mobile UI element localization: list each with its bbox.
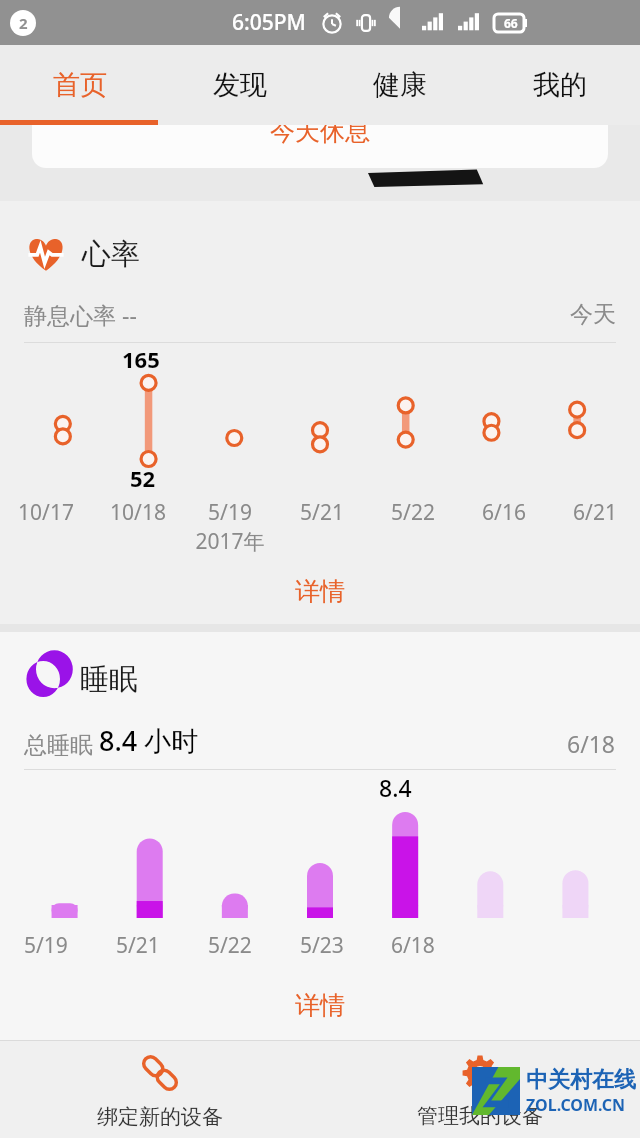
- staticText: 今天休息: [270, 125, 370, 147]
- staticText: 5/22: [208, 931, 252, 960]
- staticText: ZOL.COM.CN: [526, 1094, 626, 1116]
- staticText: 首页: [53, 68, 107, 102]
- staticText: 8.4 小时: [99, 722, 199, 759]
- button[interactable]: 详情: [0, 970, 640, 1040]
- staticText: 66: [504, 15, 518, 31]
- staticText: 165: [122, 344, 160, 374]
- staticText: 静息心率 --: [24, 299, 137, 330]
- staticText: 5/23: [300, 931, 344, 960]
- staticText: 我的: [533, 68, 587, 102]
- button[interactable]: 健康: [320, 45, 480, 125]
- staticText: 总睡眠: [24, 728, 99, 759]
- staticText: 6/18: [567, 728, 616, 759]
- staticText: 5/21: [300, 498, 344, 527]
- staticText: 绑定新的设备: [97, 1104, 223, 1130]
- staticText: 管理我的设备: [417, 1103, 543, 1129]
- staticText: 心率: [82, 236, 140, 273]
- staticText: 睡眠: [80, 661, 138, 698]
- button[interactable]: 发现: [160, 45, 320, 125]
- staticText: 5/19: [208, 498, 252, 527]
- staticText: 中关村在线: [526, 1066, 636, 1094]
- staticText: 5/22: [391, 498, 435, 527]
- staticText: 6/18: [391, 931, 435, 960]
- button[interactable]: 详情: [0, 558, 640, 624]
- staticText: 6/16: [482, 498, 526, 527]
- button[interactable]: 管理我的设备: [320, 1041, 640, 1138]
- staticText: 详情: [295, 576, 345, 607]
- staticText: 6:05PM: [232, 8, 306, 37]
- staticText: 发现: [213, 68, 267, 102]
- staticText: 52: [130, 463, 156, 493]
- button[interactable]: 首页: [0, 45, 160, 125]
- staticText: 详情: [295, 990, 345, 1021]
- staticText: 10/17: [18, 498, 74, 527]
- staticText: 健康: [373, 68, 427, 102]
- staticText: 6/21: [573, 498, 617, 527]
- staticText: 2: [19, 13, 28, 33]
- button[interactable]: 我的: [480, 45, 640, 125]
- staticText: 2017年: [195, 527, 265, 556]
- button[interactable]: 绑定新的设备: [0, 1041, 320, 1138]
- button[interactable]: 今天休息: [32, 125, 608, 168]
- staticText: 8.4: [379, 772, 412, 803]
- staticText: 今天: [570, 300, 616, 329]
- staticText: 5/21: [116, 931, 160, 960]
- staticText: 5/19: [24, 931, 68, 960]
- staticText: 10/18: [110, 498, 166, 527]
